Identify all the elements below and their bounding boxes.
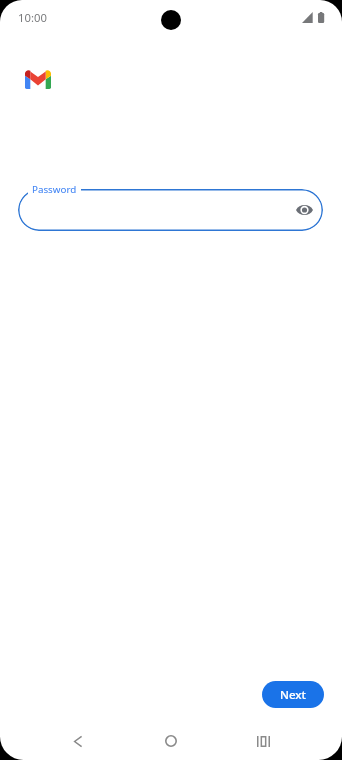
staticText: 10:00 (18, 10, 47, 25)
button[interactable]: Next (262, 681, 324, 708)
button[interactable]: Recent apps (239, 722, 287, 760)
staticText: Password (32, 183, 77, 196)
button[interactable]: Show password (292, 198, 316, 222)
button[interactable]: Back (54, 722, 102, 760)
button[interactable]: Show password (18, 189, 323, 231)
staticText: Next (280, 687, 306, 703)
button[interactable]: Home (147, 722, 195, 760)
